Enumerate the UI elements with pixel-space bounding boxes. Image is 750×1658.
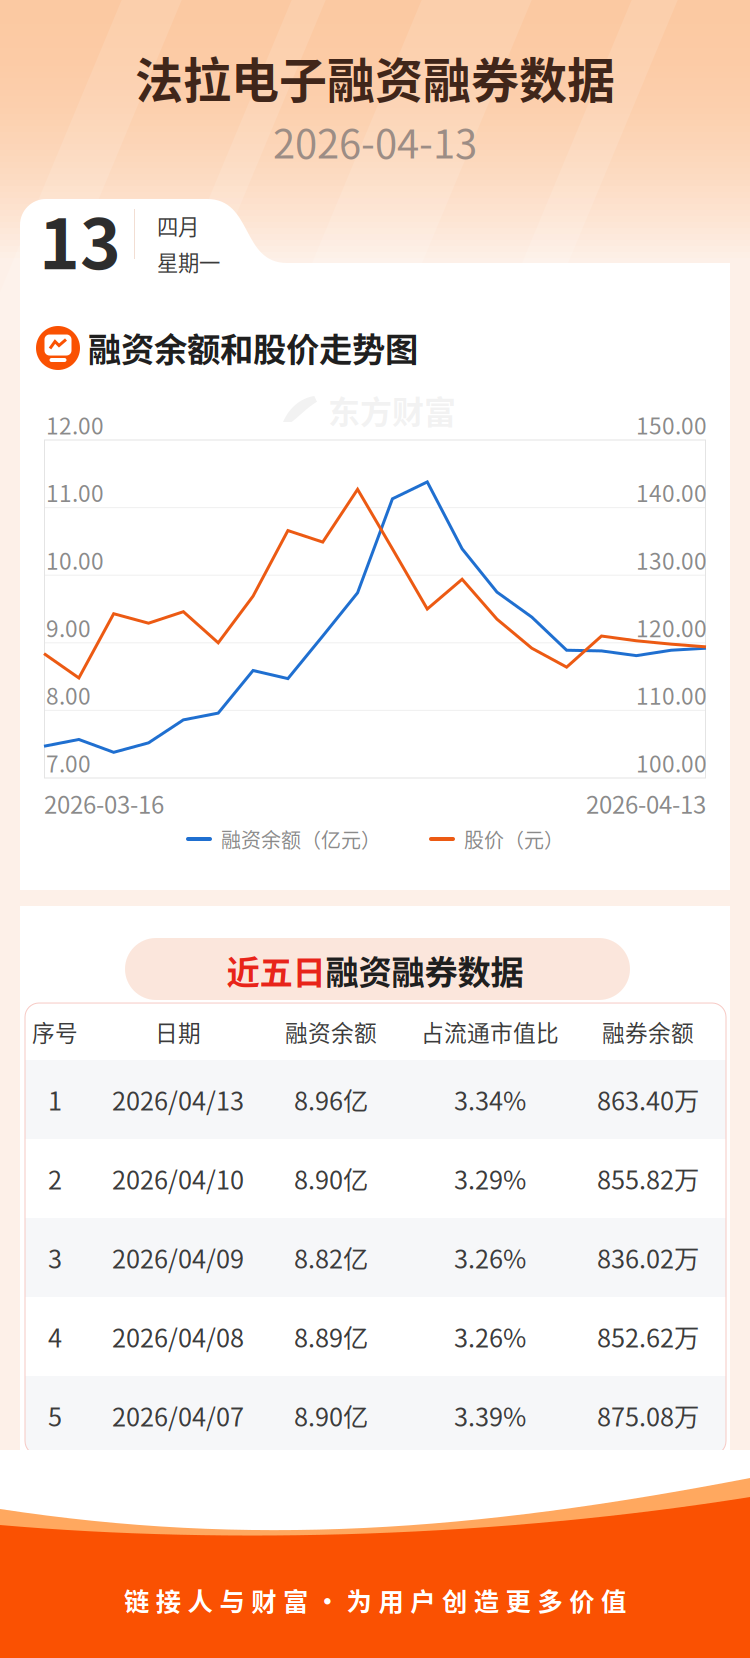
staticText: 100.00 [636, 746, 707, 779]
staticText: 2 [48, 1160, 62, 1197]
staticText: 占流通市值比 [421, 1015, 559, 1048]
staticText: 5 [48, 1397, 62, 1434]
staticText: 120.00 [636, 611, 707, 644]
staticText: 序号 [32, 1015, 78, 1048]
staticText: 13 [39, 189, 121, 289]
staticText: 融资余额 [285, 1015, 377, 1048]
staticText: 近五日 [226, 946, 325, 994]
staticText: 2026/04/09 [112, 1239, 244, 1276]
staticText: 东方财富 [325, 1219, 453, 1265]
staticText: 1 [48, 1081, 62, 1118]
staticText: 融资余额（亿元） [221, 824, 381, 853]
staticText: 150.00 [636, 408, 707, 441]
staticText: 2026-04-13 [586, 786, 706, 821]
staticText: 2026/04/10 [112, 1160, 244, 1197]
staticText: 3 [48, 1239, 62, 1276]
staticText: 2026-03-16 [44, 786, 164, 821]
staticText: 四月 [157, 210, 199, 241]
staticText: 东方财富 [328, 387, 456, 433]
staticText: 12.00 [46, 408, 104, 441]
staticText: 2026-04-13 [273, 112, 477, 170]
staticText: 星期一 [157, 246, 220, 277]
staticText: 链接人与财富·为用户创造更多价值 [124, 1582, 626, 1618]
staticText: 3.26% [454, 1239, 526, 1276]
staticText: 3.34% [454, 1081, 526, 1118]
staticText: 875.08万 [597, 1397, 699, 1434]
staticText: 8.00 [46, 679, 91, 711]
staticText: 855.82万 [597, 1160, 699, 1197]
staticText: 110.00 [636, 679, 707, 711]
staticText: 10.00 [46, 543, 104, 576]
staticText: 日期 [155, 1015, 201, 1048]
staticText: 2026/04/13 [112, 1081, 244, 1118]
staticText: 法拉电子融资融券数据 [135, 42, 615, 112]
staticText: 11.00 [46, 476, 104, 509]
staticText: 7.00 [46, 746, 91, 779]
staticText: 3.29% [454, 1160, 526, 1197]
staticText: 股价（元） [464, 824, 564, 853]
staticText: 130.00 [636, 543, 707, 576]
staticText: 140.00 [636, 476, 707, 509]
staticText: 836.02万 [597, 1239, 699, 1276]
staticText: 8.90亿 [294, 1397, 368, 1434]
staticText: 863.40万 [597, 1081, 699, 1118]
staticText: 融资融券数据 [325, 946, 523, 994]
staticText: 2026/04/08 [112, 1318, 244, 1355]
staticText: 3.26% [454, 1318, 526, 1355]
staticText: 2026/04/07 [112, 1397, 244, 1434]
staticText: 3.39% [454, 1397, 526, 1434]
staticText: 融券余额 [602, 1015, 694, 1048]
staticText: 9.00 [46, 611, 91, 644]
staticText: 融资余额和股价走势图 [88, 323, 418, 371]
staticText: 8.82亿 [294, 1239, 368, 1276]
staticText: 8.90亿 [294, 1160, 368, 1197]
staticText: 8.96亿 [294, 1081, 368, 1118]
staticText: 852.62万 [597, 1318, 699, 1355]
staticText: 4 [48, 1318, 62, 1355]
staticText: 8.89亿 [294, 1318, 368, 1355]
